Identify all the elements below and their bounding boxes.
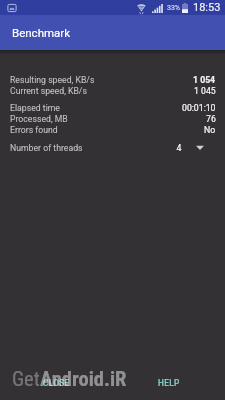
staticText: Android.iR	[40, 367, 127, 391]
staticText: 1 054	[193, 75, 216, 85]
staticText: 4	[168, 143, 190, 153]
button[interactable]: HELP	[153, 374, 185, 392]
staticText: Processed, MB	[10, 114, 68, 124]
staticText: CLOSE	[43, 378, 70, 388]
staticText: Elapsed time	[10, 103, 60, 113]
staticText: No	[204, 125, 216, 135]
staticText: Errors found	[10, 125, 58, 135]
staticText: Current speed, KB/s	[10, 86, 87, 96]
button[interactable]: 4	[168, 140, 214, 156]
staticText: Benchmark	[12, 26, 71, 39]
staticText: Get	[12, 367, 40, 391]
staticText: 33%	[167, 4, 180, 12]
staticText: Resulting speed, KB/s	[10, 75, 95, 85]
staticText: Number of threads	[10, 143, 83, 153]
staticText: 18:53	[193, 1, 221, 14]
staticText: HELP	[158, 378, 180, 388]
staticText: 00:01:10	[182, 103, 216, 113]
staticText: 1 045	[194, 86, 216, 96]
other: Screenshot notification	[7, 3, 17, 13]
staticText: 76	[206, 114, 216, 124]
button[interactable]: CLOSE	[38, 374, 75, 392]
